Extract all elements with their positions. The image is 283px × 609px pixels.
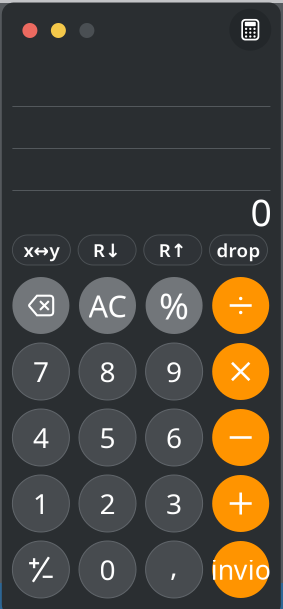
button[interactable]: drop (209, 235, 267, 265)
button[interactable]: Close (22, 23, 37, 38)
staticText: 5 (99, 419, 115, 456)
staticText: 9 (166, 353, 182, 390)
button[interactable]: R↑ (144, 235, 202, 265)
button[interactable]: 1 (12, 475, 69, 532)
staticText: 0 (99, 551, 115, 588)
staticText: AC (88, 285, 126, 326)
staticText: 7 (33, 353, 49, 390)
staticText: 1 (33, 485, 49, 522)
button[interactable]: 0 (79, 541, 136, 598)
button[interactable]: Add (212, 475, 269, 532)
button[interactable]: AC (79, 277, 136, 334)
button[interactable]: 9 (146, 343, 203, 400)
staticText: 8 (99, 353, 115, 390)
staticText: % (159, 282, 189, 329)
button[interactable]: Backspace (12, 277, 69, 334)
button[interactable]: Divide (212, 277, 269, 334)
button[interactable]: Calculator (229, 9, 271, 51)
button[interactable]: Minimize (51, 23, 66, 38)
staticText: 2 (99, 485, 115, 522)
button[interactable]: Plus minus (12, 541, 69, 598)
button[interactable]: 4 (12, 409, 69, 466)
button[interactable]: 5 (79, 409, 136, 466)
button[interactable]: R↓ (78, 235, 136, 265)
button[interactable]: x↔y (12, 235, 70, 265)
staticText: 6 (166, 419, 182, 456)
button[interactable]: 6 (146, 409, 203, 466)
staticText: 0 (250, 187, 271, 237)
button[interactable]: 3 (146, 475, 203, 532)
button[interactable]: invio (212, 541, 269, 598)
button[interactable]: 8 (79, 343, 136, 400)
button[interactable]: Multiply (212, 343, 269, 400)
button[interactable]: 7 (12, 343, 69, 400)
staticText: x↔y (23, 238, 59, 262)
button[interactable]: % (146, 277, 203, 334)
staticText: , (170, 547, 178, 584)
button[interactable]: Zoom (79, 23, 94, 38)
staticText: 4 (33, 419, 49, 456)
button[interactable]: 2 (79, 475, 136, 532)
staticText: drop (216, 238, 260, 262)
staticText: invio (211, 552, 271, 587)
staticText: R↓ (93, 238, 121, 262)
staticText: 3 (166, 485, 182, 522)
staticText: R↑ (159, 238, 187, 262)
button[interactable]: Subtract (212, 409, 269, 466)
button[interactable]: Decimal separator (146, 541, 203, 598)
